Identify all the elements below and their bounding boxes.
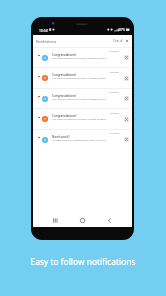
staticText: 1 min ago [109, 132, 119, 135]
staticText: Notifications [36, 39, 57, 44]
button[interactable]: Dismiss [124, 96, 129, 101]
staticText: Congratulations! [52, 53, 77, 57]
staticText: 1 min ago [109, 91, 119, 94]
staticText: Congratulations! [52, 94, 77, 98]
staticText: 87% [119, 28, 125, 32]
staticText: 1 min ago [109, 50, 119, 53]
staticText: Andrew GuitarCo requested an offer from … [52, 138, 107, 141]
button[interactable]: Home [78, 216, 87, 225]
button[interactable]: Need stock? [33, 129, 132, 149]
staticText: Need stock? [52, 135, 70, 139]
button[interactable]: Congratulations! [33, 88, 132, 108]
staticText: You have successfully bought Andrew Guit… [52, 117, 109, 120]
button[interactable]: Close [125, 39, 129, 43]
staticText: You have successfully bought Andrew Guit… [52, 97, 109, 100]
button[interactable]: Back [105, 216, 114, 225]
staticText: You have successfully bought Andrew Guit… [52, 76, 109, 79]
staticText: You have successfully bought Andrew Guit… [52, 56, 109, 59]
staticText: 10:58 [39, 28, 48, 33]
staticText: Congratulations! [52, 73, 77, 77]
button[interactable]: Dismiss [124, 117, 129, 122]
button[interactable]: Clear all [113, 39, 123, 43]
button[interactable]: Congratulations! [33, 67, 132, 88]
button[interactable]: Congratulations! [33, 47, 132, 67]
staticText: Easy to follow notifications [0, 256, 166, 267]
staticText: 1 min ago [109, 112, 119, 115]
staticText: 1 min ago [109, 71, 119, 74]
button[interactable]: Dismiss [124, 137, 129, 142]
button[interactable]: Congratulations! [33, 108, 132, 129]
button[interactable]: Dismiss [124, 76, 129, 81]
button[interactable]: Recents [51, 216, 60, 225]
button[interactable]: Dismiss [124, 55, 129, 60]
staticText: Congratulations! [52, 114, 77, 118]
